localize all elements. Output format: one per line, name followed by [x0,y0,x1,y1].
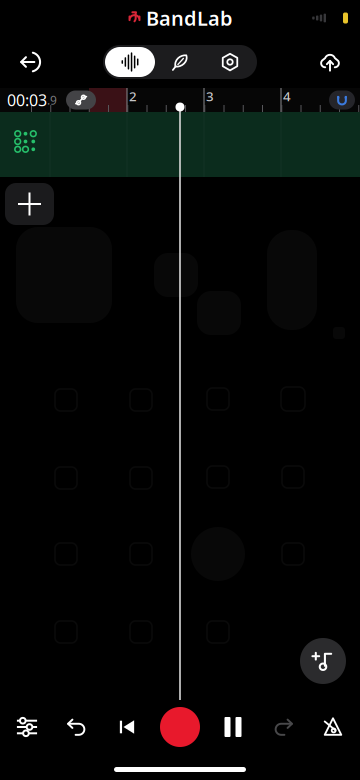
button[interactable]: Metronome [312,703,354,751]
button[interactable]: Add track [300,638,346,684]
button[interactable]: Undo [56,703,98,751]
staticText: 3 [206,87,214,105]
button[interactable]: Automation [66,90,96,109]
button[interactable]: Pause [212,703,254,751]
staticText: 4 [283,87,291,105]
staticText: 2 [129,87,137,105]
button[interactable]: Leave studio [8,40,52,84]
button[interactable]: Record [156,703,204,751]
button[interactable]: Skip to start [106,703,148,751]
button[interactable]: Snap to grid [329,90,355,109]
button[interactable]: Mixer [6,703,48,751]
staticText: 00:03 [7,89,47,111]
button[interactable]: Tracks [105,47,155,77]
button[interactable]: Redo [262,703,304,751]
staticText: BandLab [146,5,233,31]
staticText: .9 [47,92,57,108]
button[interactable]: Add track [5,183,54,225]
button[interactable]: Mastering [205,47,255,77]
button[interactable]: Lyrics [155,47,205,77]
button[interactable]: Upload [308,40,352,84]
